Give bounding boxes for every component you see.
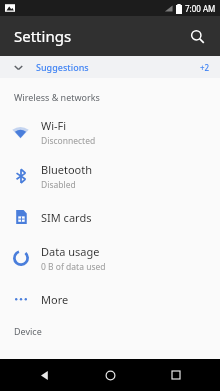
staticText: +2 (200, 62, 210, 73)
staticText: Settings (14, 26, 72, 46)
button[interactable]: Bluetooth (0, 154, 220, 198)
staticText: SIM cards (41, 210, 92, 225)
staticText: More (41, 292, 69, 307)
button[interactable]: Data usage (0, 236, 220, 280)
staticText: Wi-Fi (41, 118, 67, 133)
button[interactable]: Wi-Fi (0, 110, 220, 154)
button[interactable]: Suggestions (0, 56, 220, 78)
button[interactable]: Search (182, 21, 212, 51)
staticText: Bluetooth (41, 162, 93, 177)
staticText: Data usage (41, 244, 100, 259)
staticText: Suggestions (36, 61, 89, 73)
staticText: Wireless & networks (14, 91, 100, 103)
staticText: Device (14, 325, 42, 337)
staticText: 7:00 AM (185, 3, 216, 14)
button[interactable]: SIM cards (0, 198, 220, 236)
button[interactable]: More (0, 280, 220, 318)
button[interactable]: Home (88, 359, 132, 391)
staticText: Disconnected (41, 135, 96, 147)
staticText: 0 B of data used (41, 261, 106, 273)
staticText: Disabled (41, 179, 76, 191)
button[interactable]: Back (22, 359, 66, 391)
button[interactable]: Recent apps (154, 359, 198, 391)
